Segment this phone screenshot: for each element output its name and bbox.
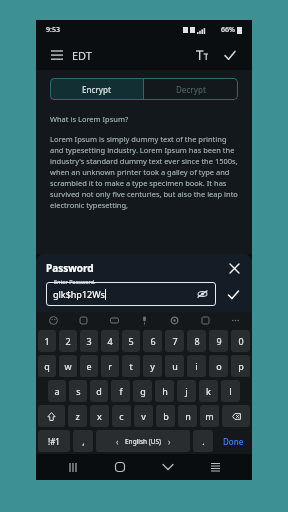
button[interactable]: . xyxy=(193,430,213,452)
button[interactable]: e xyxy=(80,355,98,377)
button[interactable]: o xyxy=(209,355,228,377)
staticText: 3 xyxy=(86,335,92,347)
button[interactable]: 8 xyxy=(187,330,206,352)
staticText: j xyxy=(185,385,188,397)
staticText: l xyxy=(229,385,232,397)
button[interactable]: h xyxy=(155,380,174,402)
button[interactable]: Stickers xyxy=(76,313,90,327)
staticText: 8 xyxy=(194,335,200,347)
button[interactable]: Settings xyxy=(167,313,181,327)
staticText: 2 xyxy=(65,335,71,347)
button[interactable]: Encrypt xyxy=(50,78,143,100)
button[interactable]: 4 xyxy=(101,330,119,352)
button[interactable]: Resize keyboard xyxy=(198,313,212,327)
button[interactable]: 6 xyxy=(143,330,162,352)
button[interactable]: Submit password xyxy=(224,285,242,303)
button[interactable]: Done xyxy=(216,430,250,452)
staticText: t xyxy=(129,360,133,372)
staticText: What is Lorem Ipsum? xyxy=(50,114,129,124)
staticText: s xyxy=(76,385,81,397)
button[interactable]: n xyxy=(178,405,197,427)
button[interactable]: Back xyxy=(157,456,179,478)
staticText: g xyxy=(140,385,146,397)
button[interactable]: d xyxy=(90,380,108,402)
button[interactable]: Emoji xyxy=(46,313,60,327)
button[interactable]: 5 xyxy=(122,330,140,352)
staticText: Password xyxy=(46,261,94,275)
button[interactable]: i xyxy=(187,355,206,377)
button[interactable]: Shift xyxy=(38,405,65,427)
button[interactable]: Close xyxy=(226,260,242,276)
staticText: 0 xyxy=(238,335,244,347)
button[interactable]: More options xyxy=(228,313,242,327)
button[interactable]: r xyxy=(101,355,119,377)
button[interactable]: c xyxy=(112,405,131,427)
staticText: r xyxy=(108,360,112,372)
staticText: a xyxy=(54,385,60,397)
button[interactable]: g xyxy=(133,380,152,402)
button[interactable]: f xyxy=(111,380,130,402)
button[interactable]: GIF xyxy=(107,313,121,327)
staticText: w xyxy=(64,360,72,372)
button[interactable]: Home xyxy=(109,456,131,478)
staticText: e xyxy=(86,360,92,372)
button[interactable]: 3 xyxy=(80,330,98,352)
button[interactable]: Decrypt xyxy=(144,78,238,100)
staticText: 4 xyxy=(107,335,113,347)
button[interactable]: l xyxy=(221,380,240,402)
button[interactable]: Text format xyxy=(192,45,212,65)
button[interactable]: t xyxy=(122,355,140,377)
staticText: 7 xyxy=(172,335,178,347)
button[interactable]: 1 xyxy=(38,330,56,352)
staticText: Done xyxy=(223,436,244,447)
button[interactable]: , xyxy=(73,430,93,452)
button[interactable]: !#1 xyxy=(38,430,70,452)
button[interactable]: v xyxy=(134,405,153,427)
button[interactable]: Menu xyxy=(48,46,66,64)
button[interactable]: u xyxy=(165,355,184,377)
button[interactable]: Voice input xyxy=(137,313,151,327)
staticText: , xyxy=(82,435,85,447)
button[interactable]: x xyxy=(90,405,109,427)
staticText: u xyxy=(172,360,178,372)
button[interactable]: q xyxy=(38,355,56,377)
staticText: . xyxy=(202,435,205,447)
button[interactable]: 7 xyxy=(165,330,184,352)
button[interactable]: 2 xyxy=(59,330,77,352)
button[interactable]: Backspace xyxy=(222,405,250,427)
button[interactable]: z xyxy=(68,405,87,427)
button[interactable]: m xyxy=(200,405,219,427)
staticText: p xyxy=(238,360,244,372)
staticText: Lorem Ipsum is simply dummy text of the … xyxy=(50,134,238,210)
staticText: Decrypt xyxy=(176,84,206,95)
button[interactable]: y xyxy=(143,355,162,377)
button[interactable]: 0 xyxy=(231,330,250,352)
button[interactable]: 9 xyxy=(209,330,228,352)
staticText: n xyxy=(185,410,191,422)
button[interactable]: b xyxy=(156,405,175,427)
staticText: › xyxy=(168,436,171,447)
staticText: !#1 xyxy=(48,436,60,447)
staticText: Enter Password. xyxy=(54,278,96,285)
staticText: b xyxy=(163,410,169,422)
button[interactable]: w xyxy=(59,355,77,377)
staticText: glk$hp12Ws xyxy=(53,288,105,300)
button[interactable]: j xyxy=(177,380,196,402)
staticText: y xyxy=(150,360,155,372)
staticText: x xyxy=(97,410,102,422)
button[interactable]: s xyxy=(69,380,87,402)
staticText: 9 xyxy=(216,335,222,347)
staticText: 5 xyxy=(128,335,134,347)
button[interactable]: Keyboard switcher xyxy=(204,456,226,478)
staticText: 1 xyxy=(44,335,50,347)
button[interactable]: a xyxy=(48,380,66,402)
staticText: o xyxy=(216,360,222,372)
button[interactable]: k xyxy=(199,380,218,402)
button[interactable]: Recents xyxy=(62,456,84,478)
staticText: 9:53 xyxy=(46,25,60,35)
button[interactable]: p xyxy=(231,355,250,377)
button[interactable]: Toggle password visibility xyxy=(195,287,209,301)
button[interactable]: Enter Password. xyxy=(46,282,216,306)
button[interactable]: ‹ xyxy=(96,430,190,452)
button[interactable]: Confirm xyxy=(220,45,240,65)
